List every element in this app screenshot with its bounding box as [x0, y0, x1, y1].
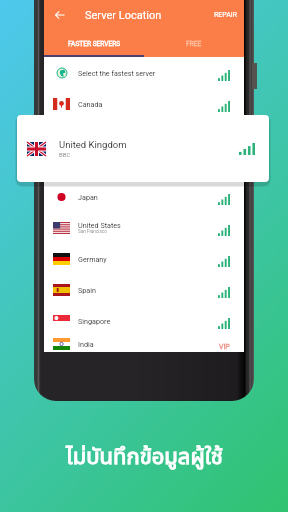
button[interactable]: Spain	[44, 274, 244, 305]
button[interactable]: Germany	[44, 243, 244, 274]
button[interactable]: India	[44, 336, 244, 352]
staticText: Canada	[78, 100, 103, 108]
button[interactable]: United States	[44, 212, 244, 243]
staticText: Server Location	[85, 9, 162, 22]
staticText: United Kingdom	[59, 139, 127, 150]
button[interactable]: United Kingdom	[17, 115, 269, 182]
staticText: Singapore	[78, 317, 111, 325]
button[interactable]: REPAIR	[208, 3, 244, 27]
staticText: VIP	[219, 343, 230, 351]
staticText: FREE	[186, 40, 202, 48]
staticText: FASTER SERVERS	[68, 40, 121, 48]
staticText: Japan	[78, 193, 98, 201]
staticText: ไม่บันทึกข้อมูลผู้ใช้	[66, 441, 223, 474]
staticText: Spain	[78, 286, 96, 294]
button[interactable]: Canada	[44, 88, 244, 119]
button[interactable]: FASTER SERVERS	[44, 30, 144, 57]
staticText: India	[78, 340, 94, 348]
staticText: Select the fastest server	[78, 69, 156, 77]
staticText: San Francisco	[78, 229, 107, 234]
button[interactable]: Singapore	[44, 305, 244, 336]
staticText: United States	[78, 221, 121, 229]
button[interactable]: Japan	[44, 181, 244, 212]
staticText: REPAIR	[214, 11, 238, 19]
button[interactable]: Back	[44, 0, 76, 30]
staticText: Germany	[78, 255, 107, 263]
staticText: BBC	[59, 151, 71, 158]
button[interactable]: Select the fastest server	[44, 57, 244, 88]
button[interactable]: FREE	[144, 30, 244, 57]
